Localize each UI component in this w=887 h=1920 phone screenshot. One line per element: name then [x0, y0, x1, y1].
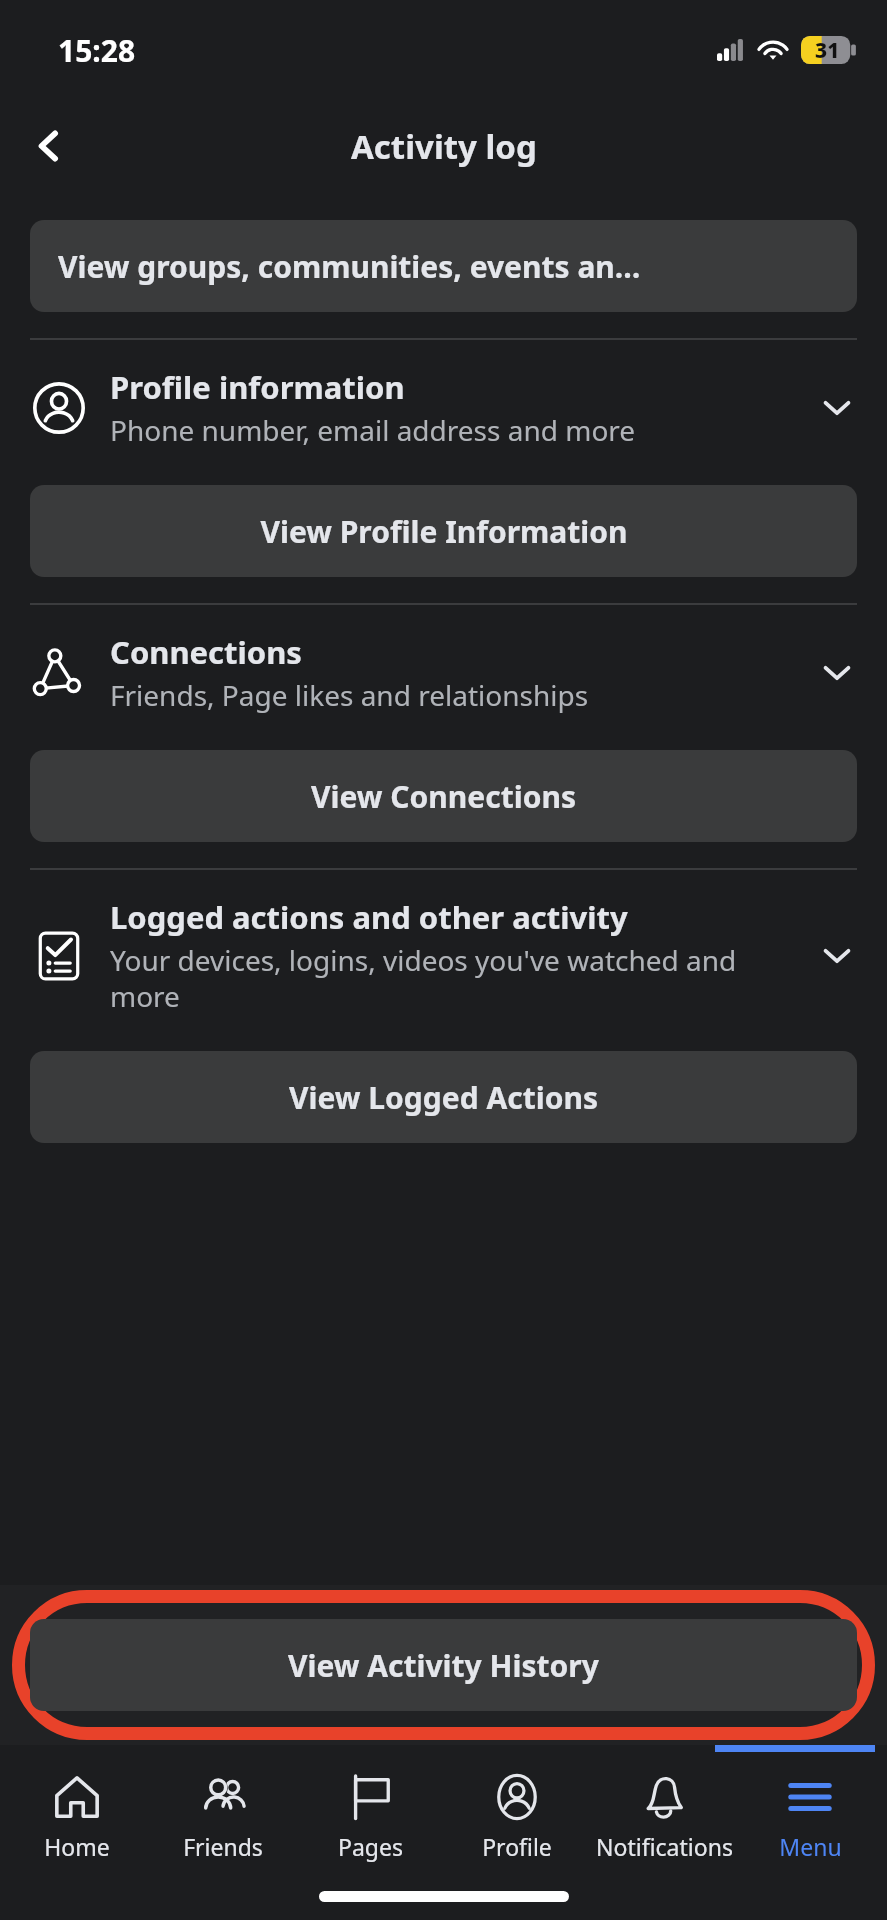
- staticText: Connections: [110, 631, 302, 673]
- staticText: View Logged Actions: [289, 1077, 598, 1118]
- staticText: Home: [44, 1831, 110, 1862]
- staticText: Notifications: [596, 1831, 733, 1862]
- button[interactable]: View Logged Actions: [30, 1051, 857, 1143]
- staticText: View Activity History: [288, 1645, 599, 1686]
- staticText: View Profile Information: [260, 511, 628, 552]
- button[interactable]: Logged actions and other activity: [0, 870, 887, 1037]
- staticText: Activity log: [351, 124, 537, 169]
- button[interactable]: Profile information: [0, 340, 887, 471]
- button[interactable]: Profile: [447, 1767, 587, 1866]
- button[interactable]: Menu: [740, 1767, 880, 1866]
- staticText: Profile: [482, 1831, 552, 1862]
- button[interactable]: View Activity History: [30, 1619, 857, 1711]
- button[interactable]: View Profile Information: [30, 485, 857, 577]
- staticText: Logged actions and other activity: [110, 896, 628, 938]
- button[interactable]: View groups, communities, events an…: [30, 220, 857, 312]
- staticText: Friends: [183, 1831, 263, 1862]
- staticText: Menu: [779, 1831, 842, 1862]
- staticText: Friends, Page likes and relationships: [110, 676, 589, 714]
- other: Expand: [811, 930, 863, 982]
- other: Expand: [811, 382, 863, 434]
- button[interactable]: Connections: [0, 605, 887, 736]
- staticText: View groups, communities, events an…: [58, 246, 641, 287]
- button[interactable]: Friends: [153, 1767, 293, 1866]
- other: Expand: [811, 647, 863, 699]
- staticText: 15:28: [58, 30, 136, 71]
- button[interactable]: Pages: [300, 1767, 440, 1866]
- staticText: Profile information: [110, 366, 405, 408]
- staticText: Pages: [338, 1831, 403, 1862]
- staticText: View Connections: [311, 776, 576, 817]
- staticText: 31: [815, 36, 840, 65]
- button[interactable]: Back: [18, 115, 80, 177]
- button[interactable]: View Connections: [30, 750, 857, 842]
- staticText: Phone number, email address and more: [110, 411, 636, 449]
- button[interactable]: Home: [7, 1767, 147, 1866]
- staticText: Your devices, logins, videos you've watc…: [110, 941, 799, 1015]
- button[interactable]: Notifications: [594, 1767, 734, 1866]
